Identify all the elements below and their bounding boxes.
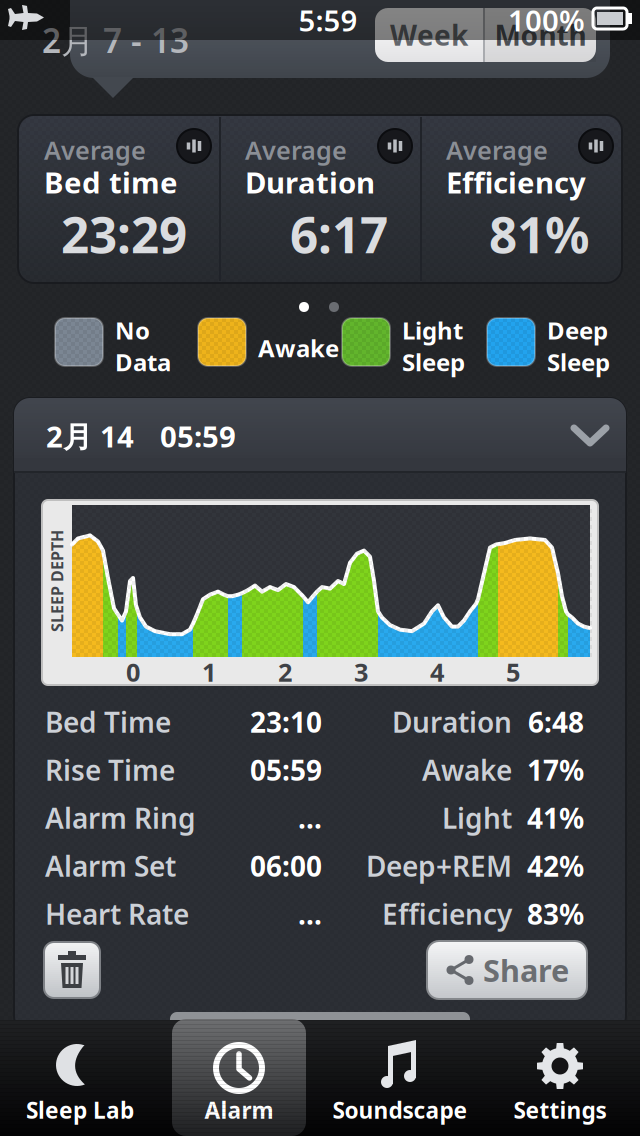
staticText: 6:48 [528,703,584,741]
button[interactable]: Share [427,941,587,999]
staticText: Awake [422,751,512,789]
staticText: Light Sleep [402,314,465,378]
staticText: Sleep Lab [26,1095,134,1125]
staticText: 4 [430,655,444,689]
staticText: 3 [354,655,368,689]
button[interactable]: Chart [177,129,211,163]
staticText: 83% [527,895,584,933]
staticText: Deep+REM [366,847,512,885]
button[interactable]: Chart [579,129,613,163]
staticText: Alarm Ring [45,799,196,837]
staticText: 05:59 [250,751,322,789]
staticText: Awake [258,332,339,364]
staticText: 41% [527,799,584,837]
staticText: Settings [513,1095,606,1125]
staticText: Week [390,16,468,54]
staticText: Share [483,950,569,990]
staticText: Alarm [204,1095,273,1125]
staticText: Duration [392,703,512,741]
staticText: 23:10 [250,703,322,741]
button[interactable]: Delete [44,942,100,998]
staticText: Month [494,16,586,54]
button[interactable]: Alarm [172,1019,306,1136]
staticText: Efficiency [446,162,586,201]
staticText: 81% [489,201,589,267]
staticText: 100% [508,0,585,39]
staticText: Light [442,799,512,837]
staticText: 1 [202,655,216,689]
button[interactable]: Collapse day details [14,398,626,473]
staticText: No Data [115,314,171,378]
button[interactable]: Week [375,8,483,62]
staticText: 0 [126,655,140,689]
staticText: 5:59 [298,0,357,39]
button[interactable]: Settings [482,1020,638,1136]
staticText: Heart Rate [45,895,189,933]
button[interactable]: Chart [378,129,412,163]
staticText: Average [44,133,146,167]
staticText: Average [245,133,347,167]
staticText: 2月 14 [46,416,134,455]
staticText: 5 [506,655,520,689]
button[interactable]: Month [485,8,596,62]
staticText: 2 [278,655,292,689]
staticText: Deep Sleep [547,314,610,378]
staticText: 17% [527,751,584,789]
staticText: 6:17 [290,201,388,267]
staticText: 23:29 [61,201,187,267]
staticText: ... [298,895,322,933]
staticText: SLEEP DEPTH [6,570,108,592]
staticText: 42% [527,847,584,885]
staticText: Duration [245,162,375,201]
staticText: Average [446,133,548,167]
staticText: Bed time [44,162,178,201]
staticText: Efficiency [382,895,512,933]
staticText: ... [298,799,322,837]
staticText: Soundscape [332,1095,467,1125]
staticText: 05:59 [160,416,236,455]
staticText: 06:00 [250,847,322,885]
staticText: Rise Time [45,751,175,789]
staticText: Alarm Set [45,847,176,885]
staticText: 2月 7 - 13 [42,18,189,62]
button[interactable]: Sleep Lab [1,1020,159,1136]
staticText: Bed Time [45,703,171,741]
button[interactable]: Soundscape [320,1020,480,1136]
